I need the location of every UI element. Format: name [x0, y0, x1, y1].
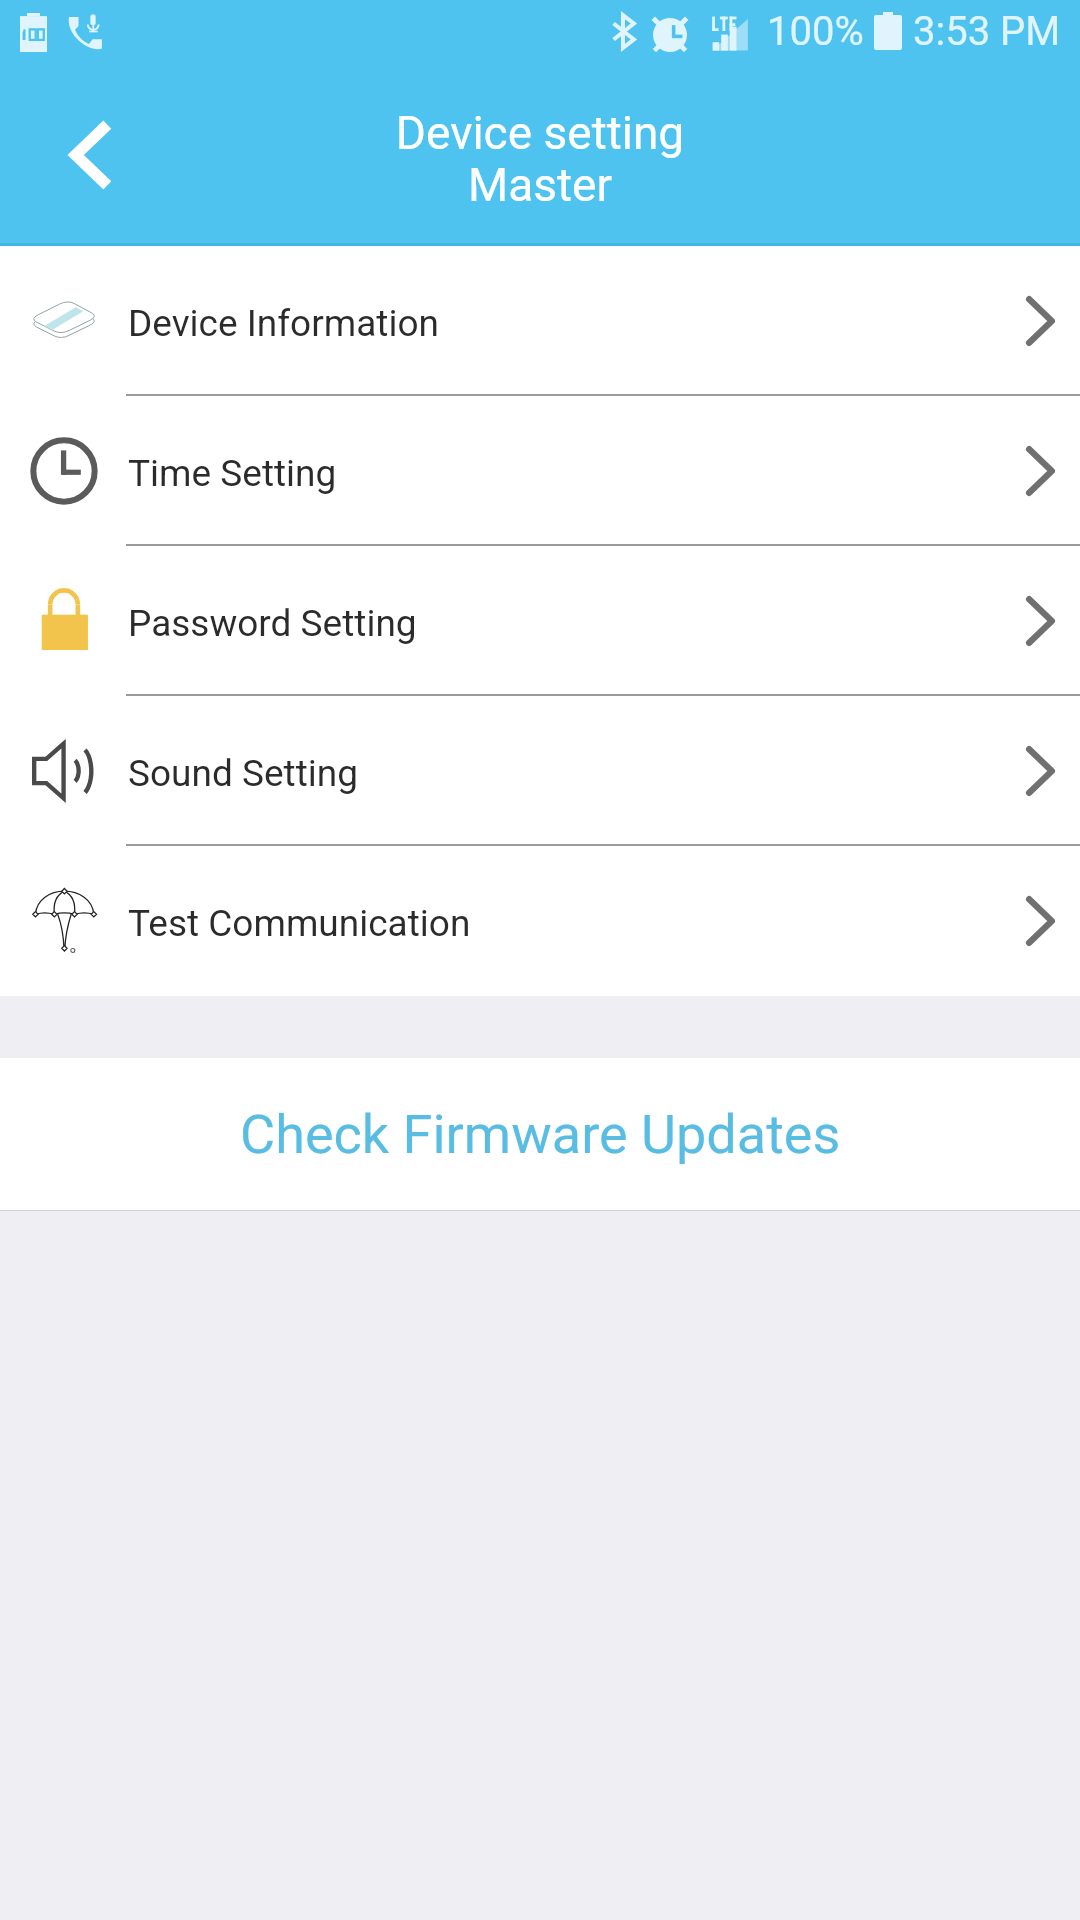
button[interactable]: Check Firmware Updates [0, 1058, 1080, 1210]
staticText: Sound Setting [128, 752, 358, 795]
staticText: Test Communication [128, 902, 471, 945]
staticText: Device setting Master [0, 106, 1080, 212]
staticText: Check Firmware Updates [240, 1103, 841, 1166]
button[interactable]: Password Setting [0, 546, 1080, 696]
button[interactable]: Time Setting [0, 396, 1080, 546]
button[interactable]: Sound Setting [0, 696, 1080, 846]
staticText: 3:53 PM [913, 8, 1061, 55]
staticText: Device Information [128, 302, 439, 345]
button[interactable]: Device Information [0, 246, 1080, 396]
button[interactable]: Back [55, 119, 127, 191]
staticText: Time Setting [128, 452, 337, 495]
staticText: Password Setting [128, 602, 417, 645]
staticText: 100% [767, 8, 864, 55]
button[interactable]: Test Communication [0, 846, 1080, 996]
